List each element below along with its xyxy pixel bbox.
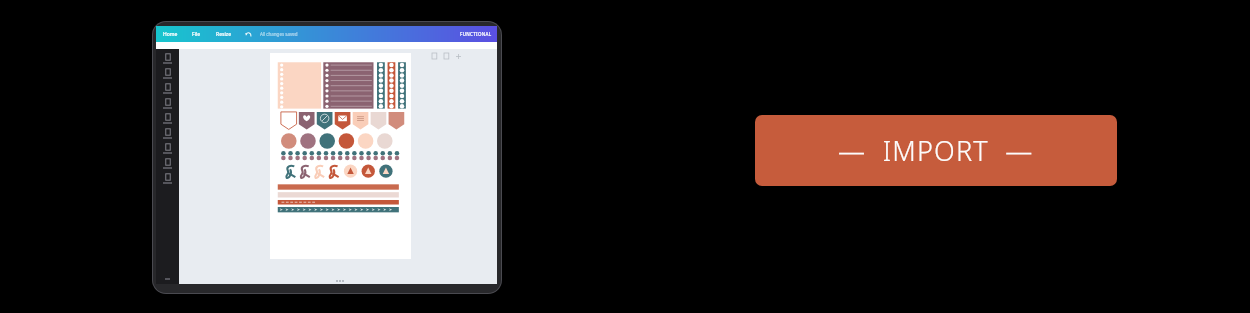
button[interactable]: [270, 53, 411, 259]
button[interactable]: File: [189, 29, 204, 40]
button[interactable]: [156, 66, 179, 81]
staticText: Resize: [216, 31, 232, 38]
button[interactable]: [156, 111, 179, 126]
button[interactable]: [156, 96, 179, 111]
button[interactable]: Duplicate: [443, 52, 450, 59]
button[interactable]: Resize: [213, 29, 235, 40]
button[interactable]: [156, 51, 179, 66]
staticText: Home: [163, 31, 178, 38]
staticText: FUNCTIONAL: [460, 31, 492, 37]
button[interactable]: Home: [160, 29, 181, 40]
button[interactable]: — IMPORT —: [755, 115, 1117, 186]
staticText: — IMPORT —: [838, 132, 1034, 169]
staticText: File: [192, 31, 201, 38]
button[interactable]: [156, 81, 179, 96]
button[interactable]: Page: [431, 52, 438, 59]
button[interactable]: FUNCTIONAL: [457, 31, 495, 37]
button[interactable]: [156, 171, 179, 186]
button[interactable]: [156, 156, 179, 171]
button[interactable]: Add: [455, 53, 461, 59]
button[interactable]: [156, 141, 179, 156]
button[interactable]: [156, 126, 179, 141]
staticText: All changes saved: [260, 31, 298, 37]
button[interactable]: Undo: [243, 29, 253, 39]
